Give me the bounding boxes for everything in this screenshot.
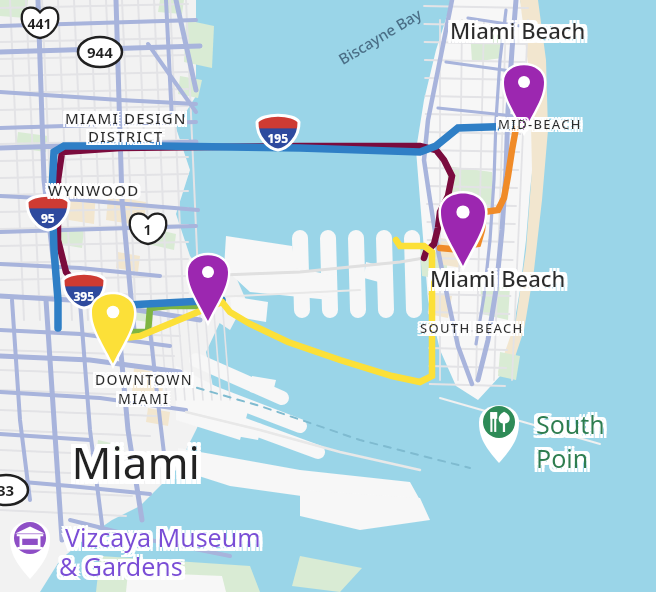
button[interactable]: Map of Miami with saved place markers: [0, 0, 656, 592]
